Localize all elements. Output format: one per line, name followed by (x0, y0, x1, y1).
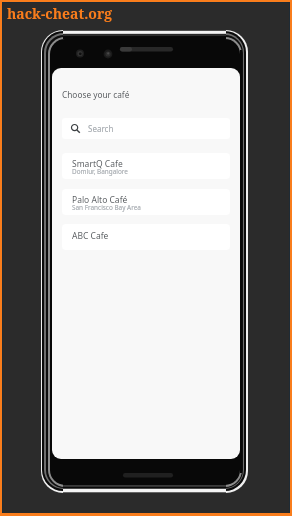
button[interactable]: ABC Cafe (62, 224, 230, 250)
button[interactable]: Palo Alto Café (62, 189, 230, 215)
staticText: San Francisco Bay Area (72, 203, 141, 212)
button[interactable]: SmartQ Cafe (62, 153, 230, 179)
staticText: Palo Alto Café (72, 194, 128, 206)
staticText: ABC Cafe (72, 230, 109, 242)
staticText: Choose your café (62, 89, 130, 100)
staticText: SmartQ Cafe (72, 158, 123, 170)
staticText: Search (88, 123, 114, 134)
staticText: Domlur, Bangalore (72, 167, 128, 176)
staticText: hack-cheat.org (7, 4, 113, 23)
button[interactable]: Search (62, 118, 230, 139)
other: Search (70, 123, 81, 134)
